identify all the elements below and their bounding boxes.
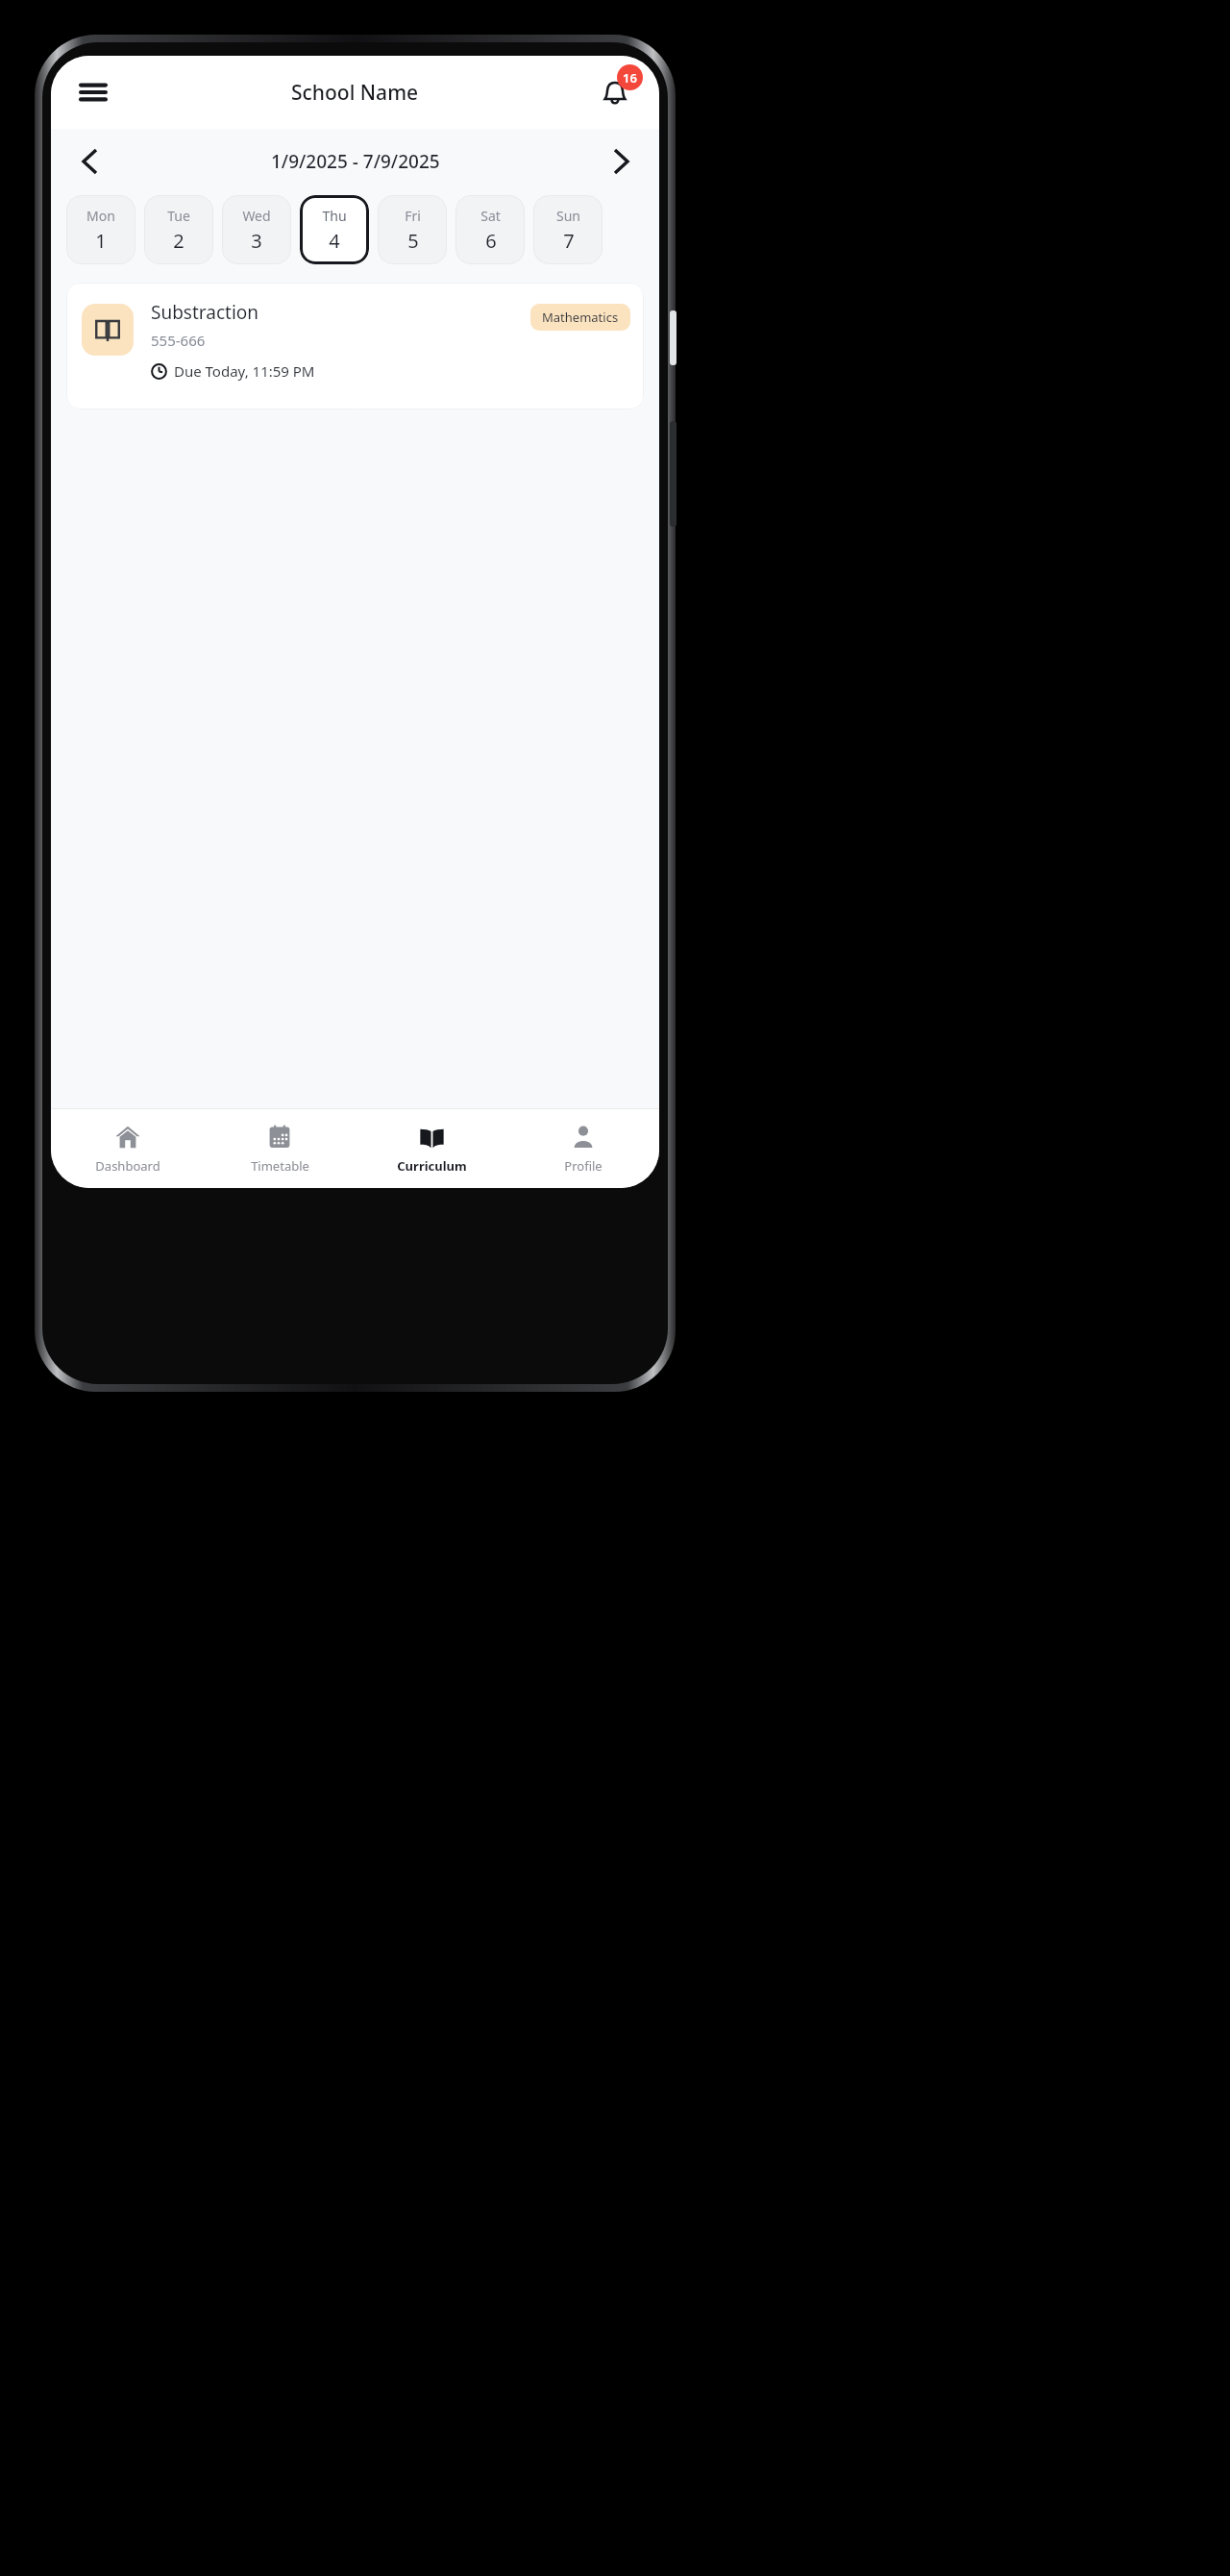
button[interactable]: Notifications, 16 unread xyxy=(590,67,640,117)
button[interactable]: Mon xyxy=(66,195,135,264)
staticText: School Name xyxy=(291,79,419,107)
button[interactable]: Sat xyxy=(455,195,525,264)
staticText: Sun xyxy=(556,207,580,225)
button[interactable]: Next week xyxy=(600,140,642,183)
staticText: 6 xyxy=(485,228,497,254)
staticText: Due Today, 11:59 PM xyxy=(174,361,315,381)
staticText: Profile xyxy=(564,1157,603,1175)
staticText: Tue xyxy=(167,207,190,225)
button[interactable]: Substraction xyxy=(66,283,644,409)
staticText: 2 xyxy=(173,228,184,254)
staticText: Dashboard xyxy=(95,1157,160,1175)
button[interactable]: Wed xyxy=(222,195,291,264)
button[interactable]: Thu xyxy=(300,195,369,264)
staticText: Fri xyxy=(405,207,421,225)
staticText: 5 xyxy=(407,228,419,254)
button[interactable]: Fri xyxy=(378,195,447,264)
staticText: 3 xyxy=(251,228,262,254)
staticText: 4 xyxy=(329,228,340,254)
button[interactable]: Curriculum xyxy=(356,1109,507,1188)
staticText: Mon xyxy=(86,207,115,225)
staticText: Thu xyxy=(322,207,347,225)
staticText: 7 xyxy=(563,228,575,254)
staticText: Curriculum xyxy=(397,1157,467,1175)
staticText: 1/9/2025 - 7/9/2025 xyxy=(271,149,440,174)
button[interactable]: Previous week xyxy=(68,140,111,183)
staticText: Timetable xyxy=(251,1157,309,1175)
staticText: 555-666 xyxy=(151,331,206,350)
staticText: Substraction xyxy=(151,300,259,325)
staticText: Mathematics xyxy=(542,309,619,326)
button[interactable]: Timetable xyxy=(204,1109,356,1188)
staticText: Wed xyxy=(242,207,271,225)
button[interactable]: Sun xyxy=(533,195,603,264)
staticText: Sat xyxy=(480,207,501,225)
button[interactable]: Dashboard xyxy=(51,1109,204,1188)
button[interactable]: Open navigation menu xyxy=(72,71,114,113)
staticText: 1 xyxy=(95,228,107,254)
button[interactable]: Profile xyxy=(507,1109,659,1188)
button[interactable]: Tue xyxy=(144,195,213,264)
staticText: 16 xyxy=(623,69,637,87)
